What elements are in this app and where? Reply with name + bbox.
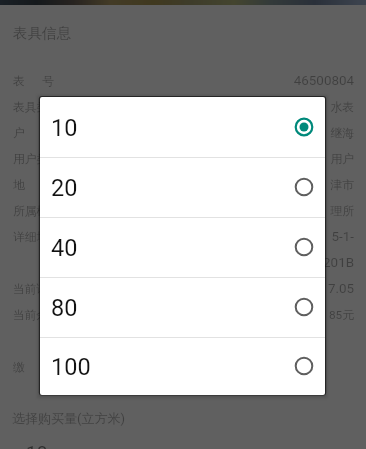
staticText: 继海 xyxy=(330,126,354,141)
staticText: 20 xyxy=(51,174,78,202)
button[interactable]: 80 xyxy=(40,277,325,337)
button[interactable]: 100 xyxy=(40,337,325,395)
staticText: 100 xyxy=(51,353,91,381)
staticText: 当前读数 xyxy=(13,282,61,297)
staticText: 当前余额 xyxy=(13,308,61,323)
staticText: 用户 xyxy=(330,152,354,167)
staticText: 水表 xyxy=(330,100,354,115)
staticText: 缴 费 xyxy=(13,360,55,375)
staticText: 详细地址 xyxy=(13,230,61,245)
staticText: 40 xyxy=(51,234,78,262)
staticText: 5-1- xyxy=(331,229,354,245)
staticText: 10 xyxy=(51,114,78,142)
staticText: 46500804 xyxy=(293,73,354,89)
staticText: 所属机构 xyxy=(13,204,61,219)
staticText: 表具类型 xyxy=(13,100,61,115)
staticText: 表 号 xyxy=(13,74,55,89)
staticText: 7.05 xyxy=(327,281,354,297)
button[interactable]: 40 xyxy=(40,217,325,277)
staticText: 201B xyxy=(323,255,354,271)
staticText: 理所 xyxy=(330,204,354,219)
button[interactable]: 20 xyxy=(40,157,325,217)
staticText: 津市 xyxy=(330,178,354,193)
staticText: 10 xyxy=(26,441,48,449)
staticText: 地 址 xyxy=(13,178,55,193)
staticText: 用户类型 xyxy=(13,152,61,167)
staticText: 户 主 xyxy=(13,126,55,141)
button[interactable]: 10 xyxy=(40,97,325,157)
staticText: 85元 xyxy=(328,308,354,323)
staticText: 80 xyxy=(51,294,78,322)
staticText: 表具信息 xyxy=(13,24,71,42)
staticText: 选择购买量(立方米) xyxy=(12,410,125,426)
